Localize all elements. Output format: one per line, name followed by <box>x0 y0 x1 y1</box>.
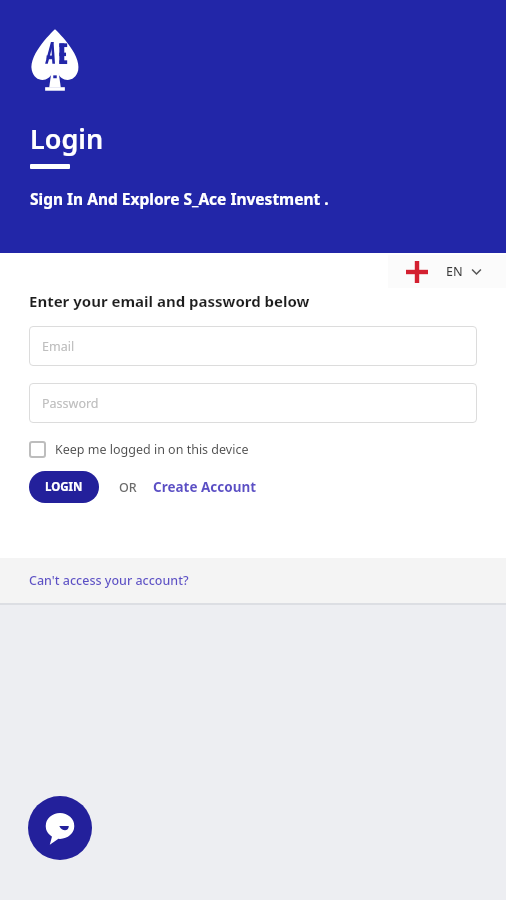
staticText: Enter your email and password below <box>29 291 310 311</box>
button[interactable]: Email <box>29 326 477 366</box>
button[interactable]: Password <box>29 383 477 423</box>
staticText: EN <box>446 263 463 280</box>
button[interactable]: Open chat support <box>28 796 92 860</box>
staticText: LOGIN <box>45 479 83 495</box>
staticText: Create Account <box>153 478 257 496</box>
staticText: Password <box>42 395 99 412</box>
staticText: Can't access your account? <box>29 572 189 589</box>
staticText: Email <box>42 338 75 355</box>
button[interactable]: Select language, English <box>388 255 506 288</box>
button[interactable]: LOGIN <box>29 471 99 503</box>
staticText: OR <box>119 479 137 496</box>
staticText: Keep me logged in on this device <box>55 441 249 458</box>
staticText: Sign In And Explore S_Ace Investment . <box>30 188 329 209</box>
button[interactable]: Keep me logged in on this device <box>29 439 257 460</box>
staticText: Login <box>30 120 104 157</box>
button[interactable]: Create Account <box>153 474 257 500</box>
button[interactable]: Can't access your account? <box>29 568 189 593</box>
